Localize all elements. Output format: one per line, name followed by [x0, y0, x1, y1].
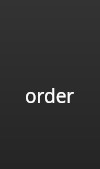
- staticText: order: [25, 83, 75, 109]
